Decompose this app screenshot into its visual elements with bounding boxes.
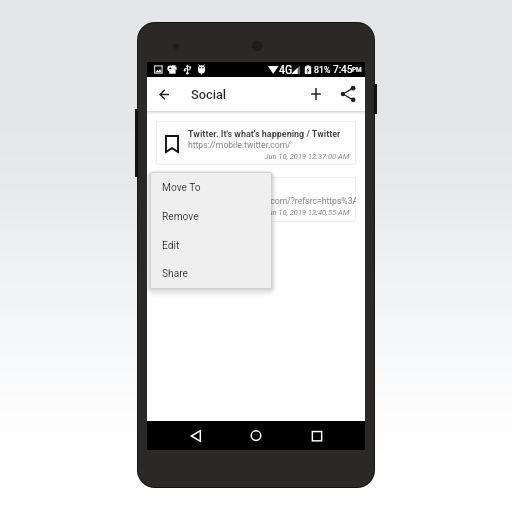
staticText: Twitter — [188, 185, 217, 196]
staticText: Jun 10, 2019 12:40:55 AM — [156, 208, 349, 217]
staticText: Remove — [162, 211, 199, 223]
staticText: https://mobile.twitter.com/?refsrc=https… — [188, 196, 356, 206]
button[interactable]: Move To — [151, 173, 271, 202]
staticText: https://mobile.twitter.com/ — [188, 140, 291, 150]
button[interactable]: Recent apps — [304, 421, 330, 450]
staticText: Share — [162, 268, 188, 280]
button[interactable]: Twitter. It's what's happening / Twitter — [156, 121, 356, 165]
button[interactable]: Edit — [151, 231, 271, 260]
button[interactable]: Remove — [151, 202, 271, 231]
staticText: Twitter. It's what's happening / Twitter — [188, 129, 341, 140]
staticText: 7:45 — [333, 64, 353, 76]
staticText: Social — [191, 87, 227, 102]
button[interactable]: Navigate up — [154, 77, 175, 111]
button[interactable]: Back — [183, 421, 209, 450]
staticText: 4G — [279, 63, 293, 77]
staticText: Move To — [162, 182, 201, 194]
button[interactable]: Add — [303, 77, 329, 111]
button[interactable]: Share — [335, 77, 361, 111]
button[interactable]: Share — [151, 260, 271, 288]
button[interactable]: Home — [243, 421, 269, 450]
button[interactable]: Twitter — [156, 177, 356, 222]
staticText: Jun 10, 2019 12:37:00 AM — [156, 152, 349, 161]
staticText: PM — [352, 66, 362, 74]
staticText: 81% — [314, 65, 331, 75]
staticText: Edit — [162, 240, 180, 252]
